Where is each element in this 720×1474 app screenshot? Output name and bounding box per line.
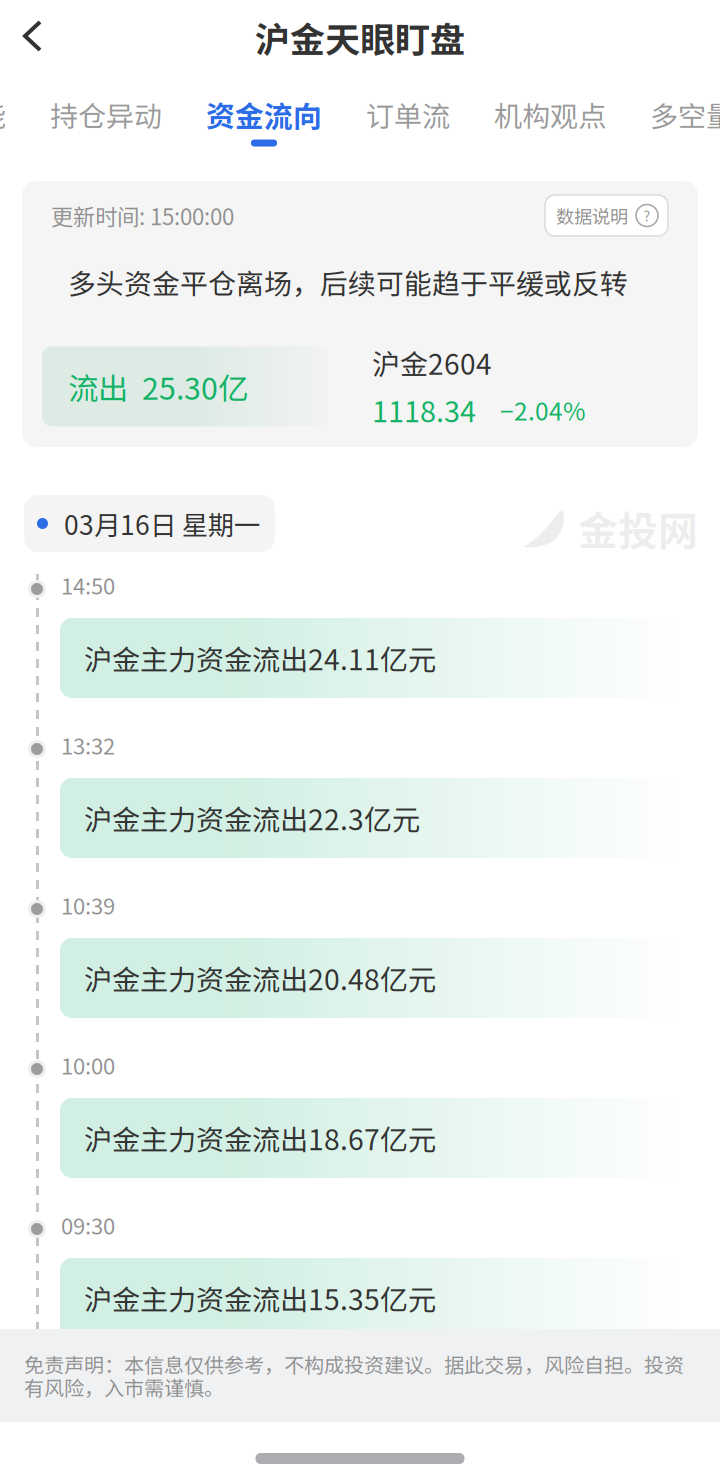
staticText: 沪金2604 [372,342,492,383]
staticText: 09:30 [61,1209,115,1241]
staticText: 14:50 [61,569,115,601]
staticText: 订单流 [366,94,450,135]
staticText: 沪金主力资金流出20.48亿元 [84,957,436,998]
staticText: 多空量能 [0,94,6,135]
button[interactable]: 10:39 [37,872,720,1032]
staticText: 沪金主力资金流出15.35亿元 [84,1277,436,1318]
button[interactable]: 13:32 [37,712,720,872]
staticText: 多头资金平仓离场，后续可能趋于平缓或反转 [68,262,628,302]
staticText: 持仓异动 [50,94,162,135]
staticText: ? [643,205,650,226]
staticText: −2.04% [500,392,585,427]
button[interactable]: Back [0,8,69,64]
staticText: 10:00 [61,1049,115,1081]
staticText: 沪金天眼盯盘 [255,12,465,63]
button[interactable]: 14:50 [37,552,720,712]
button[interactable]: 多空量能 [0,90,6,149]
staticText: 沪金主力资金流出22.3亿元 [84,797,420,838]
staticText: 流出 25.30亿 [68,365,248,408]
staticText: 资金流向 [206,94,322,135]
button[interactable]: 多空量能 [650,90,720,149]
staticText: 金投网 [578,499,698,557]
staticText: 沪金主力资金流出18.67亿元 [84,1117,436,1158]
staticText: 10:39 [61,889,115,921]
staticText: 机构观点 [494,94,606,135]
button[interactable]: 持仓异动 [50,90,162,149]
button[interactable]: 机构观点 [494,90,606,149]
staticText: 更新时间: 15:00:00 [51,199,234,232]
staticText: 沪金主力资金流出24.11亿元 [84,637,436,678]
staticText: 数据说明 [556,202,628,229]
staticText: 03月16日 星期一 [64,504,260,543]
staticText: 多空量能 [650,94,720,135]
button[interactable]: 10:00 [37,1032,720,1192]
button[interactable]: 09:30 [37,1192,720,1352]
button[interactable]: 资金流向 [206,90,322,149]
staticText: 1118.34 [372,389,476,431]
staticText: 免责声明：本信息仅供参考，不构成投资建议。据此交易，风险自担。投资有风险，入市需… [24,1349,684,1402]
button[interactable]: 数据说明 [545,195,668,236]
staticText: 13:32 [61,729,115,761]
button[interactable]: 订单流 [366,90,450,149]
